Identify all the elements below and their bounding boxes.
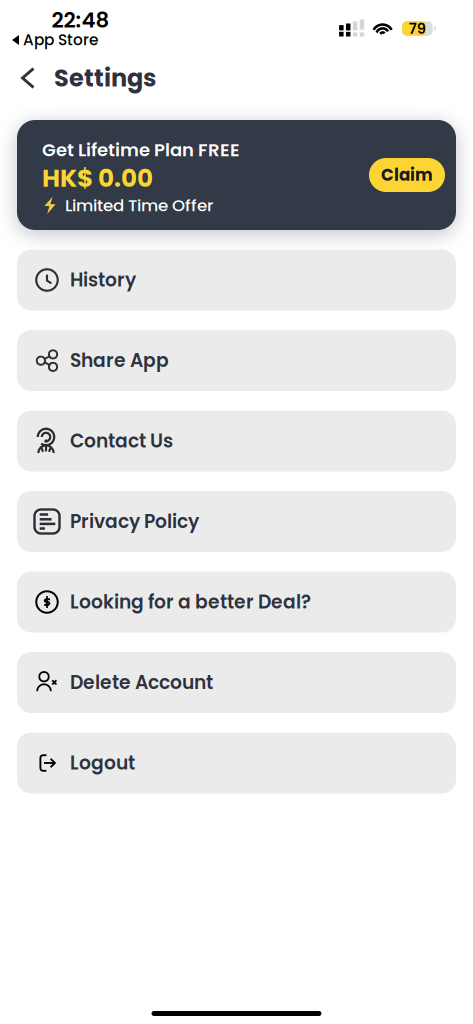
- staticText: Looking for a better Deal?: [70, 589, 311, 615]
- button[interactable]: Logout: [17, 732, 456, 793]
- button[interactable]: Contact Us: [17, 410, 456, 471]
- staticText: HK$ 0.00: [42, 161, 153, 195]
- staticText: 22:48: [51, 5, 109, 35]
- button[interactable]: Delete Account: [17, 652, 456, 713]
- staticText: Get Lifetime Plan FREE: [42, 137, 240, 163]
- staticText: App Store: [23, 29, 98, 51]
- staticText: Limited Time Offer: [65, 194, 213, 217]
- button[interactable]: History: [17, 249, 456, 310]
- staticText: Claim: [381, 163, 433, 187]
- staticText: Logout: [70, 750, 135, 776]
- staticText: Share App: [70, 347, 169, 373]
- staticText: Privacy Policy: [70, 508, 199, 534]
- button[interactable]: Claim: [369, 158, 445, 192]
- staticText: Contact Us: [70, 428, 173, 454]
- staticText: History: [70, 267, 136, 293]
- button[interactable]: Share App: [17, 330, 456, 391]
- staticText: Delete Account: [70, 669, 213, 695]
- button[interactable]: Back: [8, 59, 48, 97]
- staticText: Settings: [54, 61, 156, 95]
- button[interactable]: Privacy Policy: [17, 491, 456, 552]
- staticText: 79: [409, 18, 426, 39]
- button[interactable]: Looking for a better Deal?: [17, 571, 456, 632]
